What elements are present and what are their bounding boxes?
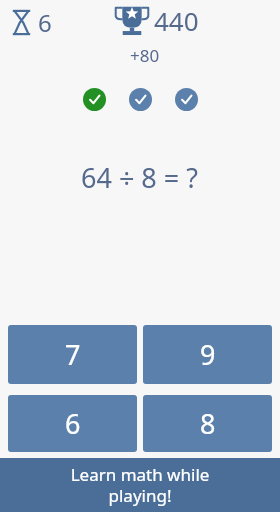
- staticText: 7: [65, 336, 81, 373]
- button[interactable]: Answered correctly: [175, 88, 198, 111]
- button[interactable]: 9: [143, 325, 272, 384]
- button[interactable]: Trophy score: [110, 3, 199, 38]
- button[interactable]: 7: [8, 325, 137, 384]
- staticText: Learn math while playing!: [0, 463, 280, 507]
- button[interactable]: Time left: [12, 6, 52, 39]
- button[interactable]: 6: [8, 395, 137, 452]
- button[interactable]: 8: [143, 395, 272, 452]
- staticText: +80: [130, 44, 160, 67]
- button[interactable]: Answered correctly: [83, 88, 106, 111]
- button[interactable]: Learn math while playing!: [0, 458, 280, 512]
- staticText: 64 ÷ 8 = ?: [81, 159, 199, 196]
- staticText: 6: [65, 405, 81, 442]
- staticText: 6: [38, 6, 52, 39]
- button[interactable]: Answered correctly: [129, 88, 152, 111]
- staticText: 440: [154, 3, 199, 38]
- staticText: 9: [200, 336, 216, 373]
- staticText: 8: [200, 405, 216, 442]
